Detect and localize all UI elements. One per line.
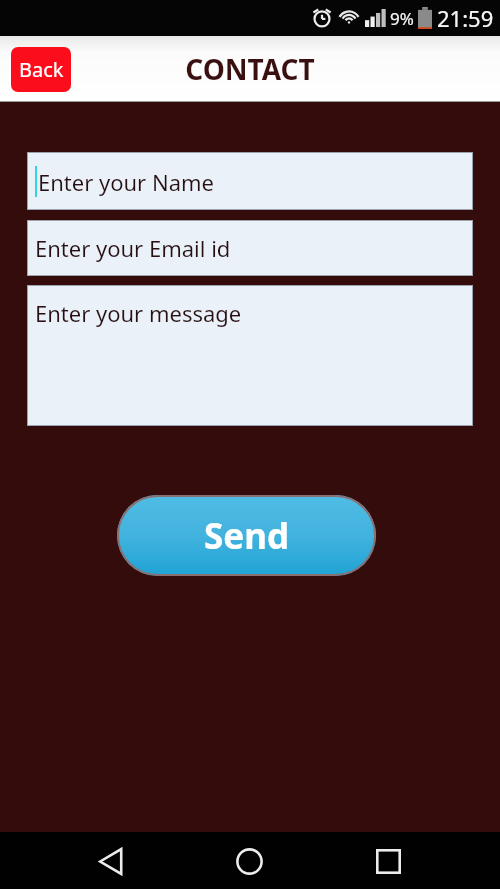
button[interactable]: Enter your Email id	[27, 220, 473, 276]
button[interactable]: Home	[222, 834, 276, 888]
button[interactable]: Enter your Name	[27, 152, 473, 210]
staticText: 21:59	[437, 3, 494, 33]
staticText: Enter your Email id	[35, 233, 231, 263]
button[interactable]: Back	[11, 47, 71, 92]
staticText: Enter your Name	[38, 167, 214, 197]
staticText: Send	[204, 512, 290, 560]
staticText: Back	[19, 56, 64, 83]
staticText: 9%	[390, 7, 414, 30]
button[interactable]: Back	[84, 834, 138, 888]
button[interactable]: Recent apps	[361, 834, 415, 888]
staticText: Enter your message	[35, 298, 242, 328]
staticText: CONTACT	[185, 50, 315, 88]
button[interactable]: Enter your message	[27, 285, 473, 426]
button[interactable]: Send	[117, 495, 376, 576]
